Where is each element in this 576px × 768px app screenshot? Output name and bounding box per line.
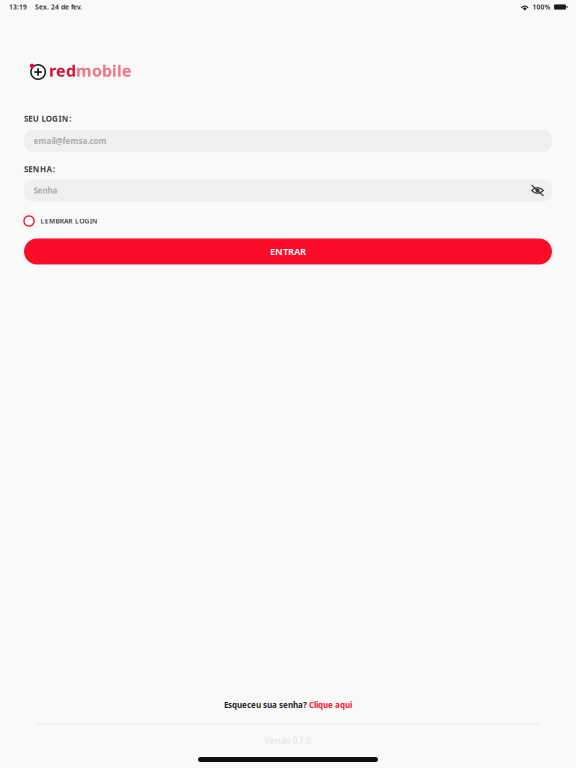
staticText: Clique aqui bbox=[309, 700, 352, 710]
staticText: Senha bbox=[33, 185, 57, 196]
staticText: SENHA: bbox=[24, 164, 55, 174]
button[interactable]: LEMBRAR LOGIN bbox=[24, 214, 552, 227]
button[interactable]: Esqueceu sua senha? bbox=[214, 696, 362, 714]
button[interactable]: ENTRAR bbox=[24, 238, 552, 264]
button[interactable]: Mostrar senha bbox=[528, 180, 547, 200]
button[interactable]: Senha bbox=[24, 179, 552, 201]
staticText: Esqueceu sua senha? bbox=[224, 700, 309, 710]
staticText: SEU LOGIN: bbox=[24, 113, 71, 124]
staticText: Sex. 24 de fev. bbox=[35, 3, 82, 11]
staticText: LEMBRAR LOGIN bbox=[40, 217, 97, 225]
staticText: 100% bbox=[532, 3, 550, 11]
staticText: red bbox=[49, 60, 76, 81]
staticText: mobile bbox=[76, 60, 132, 81]
staticText: 13:19 bbox=[9, 3, 27, 11]
staticText: Versão 0.1.0 bbox=[264, 735, 311, 746]
button[interactable]: Seu login bbox=[24, 130, 552, 152]
staticText: email@femsa.com bbox=[33, 136, 106, 146]
staticText: ENTRAR bbox=[270, 245, 306, 258]
